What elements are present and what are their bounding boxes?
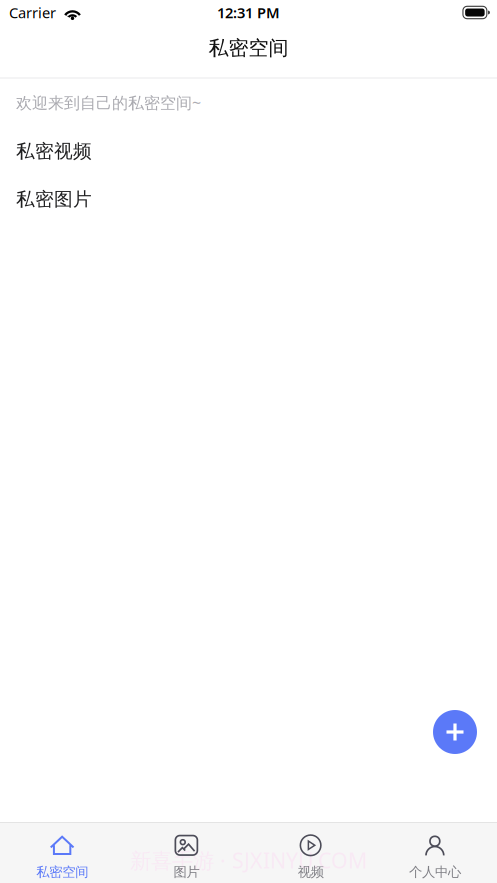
- staticText: 私密视频: [16, 140, 92, 163]
- staticText: 欢迎来到自己的私密空间~: [16, 92, 201, 113]
- button[interactable]: 私密空间: [0, 823, 124, 883]
- staticText: 私密空间: [36, 864, 88, 880]
- button[interactable]: 图片: [124, 823, 248, 883]
- button[interactable]: 私密视频: [0, 127, 497, 175]
- staticText: Carrier: [9, 3, 56, 22]
- staticText: 私密图片: [16, 188, 92, 211]
- button[interactable]: 视频: [248, 823, 373, 883]
- staticText: 图片: [173, 864, 199, 880]
- staticText: 私密空间: [208, 36, 288, 60]
- button[interactable]: 私密图片: [0, 175, 497, 223]
- staticText: 个人中心: [409, 864, 461, 880]
- staticText: 新喜手游 · SJXINYU.COM: [130, 846, 367, 874]
- staticText: 12:31 PM: [217, 3, 280, 22]
- button[interactable]: Add: [433, 710, 477, 754]
- staticText: 视频: [298, 864, 324, 880]
- button[interactable]: 个人中心: [373, 823, 497, 883]
